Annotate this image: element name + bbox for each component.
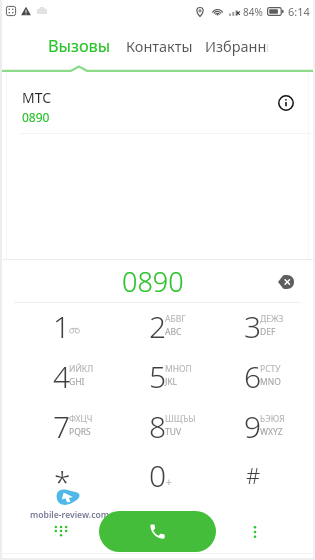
- button[interactable]: More options: [239, 516, 270, 547]
- staticText: Контакты: [126, 36, 193, 56]
- button[interactable]: 2: [110, 301, 206, 351]
- button[interactable]: 0: [110, 450, 206, 500]
- staticText: МНОП: [165, 363, 192, 375]
- button[interactable]: Dialpad: [45, 513, 76, 544]
- button[interactable]: Call details: [270, 87, 301, 118]
- button[interactable]: Call: [99, 511, 216, 552]
- staticText: АБВГ: [165, 313, 186, 325]
- button[interactable]: 4: [14, 351, 110, 401]
- button[interactable]: 8: [110, 401, 206, 451]
- staticText: МТС: [22, 88, 52, 107]
- button[interactable]: 9: [205, 401, 301, 451]
- button[interactable]: #: [205, 450, 301, 500]
- button[interactable]: Вызовы: [38, 22, 120, 70]
- staticText: ФХЦЧ: [69, 413, 93, 425]
- staticText: 3: [244, 306, 262, 347]
- staticText: 5: [149, 356, 167, 397]
- staticText: mobile-review.com: [30, 509, 116, 521]
- button[interactable]: Избранные: [205, 22, 268, 70]
- staticText: РСТУ: [260, 363, 281, 375]
- button[interactable]: 6: [205, 351, 301, 401]
- staticText: TUV: [165, 426, 182, 438]
- staticText: Избранные: [205, 36, 268, 56]
- button[interactable]: Контакты: [120, 22, 198, 70]
- staticText: +: [166, 475, 172, 489]
- staticText: ЬЭЮЯ: [260, 413, 285, 425]
- staticText: MNO: [260, 376, 281, 388]
- staticText: #: [246, 460, 261, 490]
- staticText: 0: [149, 455, 167, 496]
- staticText: ДЕЖЗ: [260, 313, 284, 325]
- staticText: ШЩЪЫ: [165, 413, 196, 425]
- button[interactable]: *: [14, 450, 110, 500]
- staticText: 6:14: [288, 4, 310, 19]
- staticText: 8: [149, 406, 167, 447]
- staticText: JKL: [165, 376, 178, 388]
- staticText: 0890: [122, 263, 184, 300]
- staticText: 6: [244, 356, 262, 397]
- staticText: ИЙКЛ: [69, 363, 94, 375]
- staticText: 1: [53, 306, 71, 347]
- staticText: *: [54, 461, 71, 502]
- staticText: 0890: [22, 109, 50, 125]
- staticText: 4: [53, 356, 71, 397]
- staticText: 84%: [243, 5, 263, 19]
- staticText: 2: [149, 306, 167, 347]
- button[interactable]: Backspace: [270, 266, 301, 297]
- staticText: PQRS: [69, 426, 91, 438]
- staticText: 9: [244, 406, 262, 447]
- staticText: ABC: [165, 326, 182, 338]
- staticText: 7: [53, 406, 71, 447]
- staticText: GHI: [69, 376, 85, 388]
- button[interactable]: 3: [205, 301, 301, 351]
- button[interactable]: 7: [14, 401, 110, 451]
- button[interactable]: МТС: [0, 76, 315, 134]
- staticText: WXYZ: [260, 426, 283, 438]
- staticText: DEF: [260, 326, 276, 338]
- button[interactable]: 1: [14, 301, 110, 351]
- staticText: Вызовы: [48, 35, 111, 57]
- button[interactable]: 5: [110, 351, 206, 401]
